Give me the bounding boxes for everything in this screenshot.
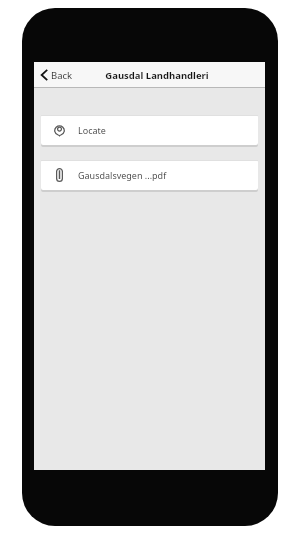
staticText: Gausdal Landhandleri (105, 69, 209, 82)
other: Attachment (56, 168, 63, 182)
staticText: Gausdalsvegen ...pdf (78, 169, 167, 181)
other: Location (54, 123, 65, 137)
staticText: Locate (78, 124, 106, 136)
staticText: Back (51, 69, 73, 82)
button[interactable]: Back (34, 62, 82, 88)
button[interactable]: Attachment (41, 160, 258, 190)
button[interactable]: Location (41, 115, 258, 145)
